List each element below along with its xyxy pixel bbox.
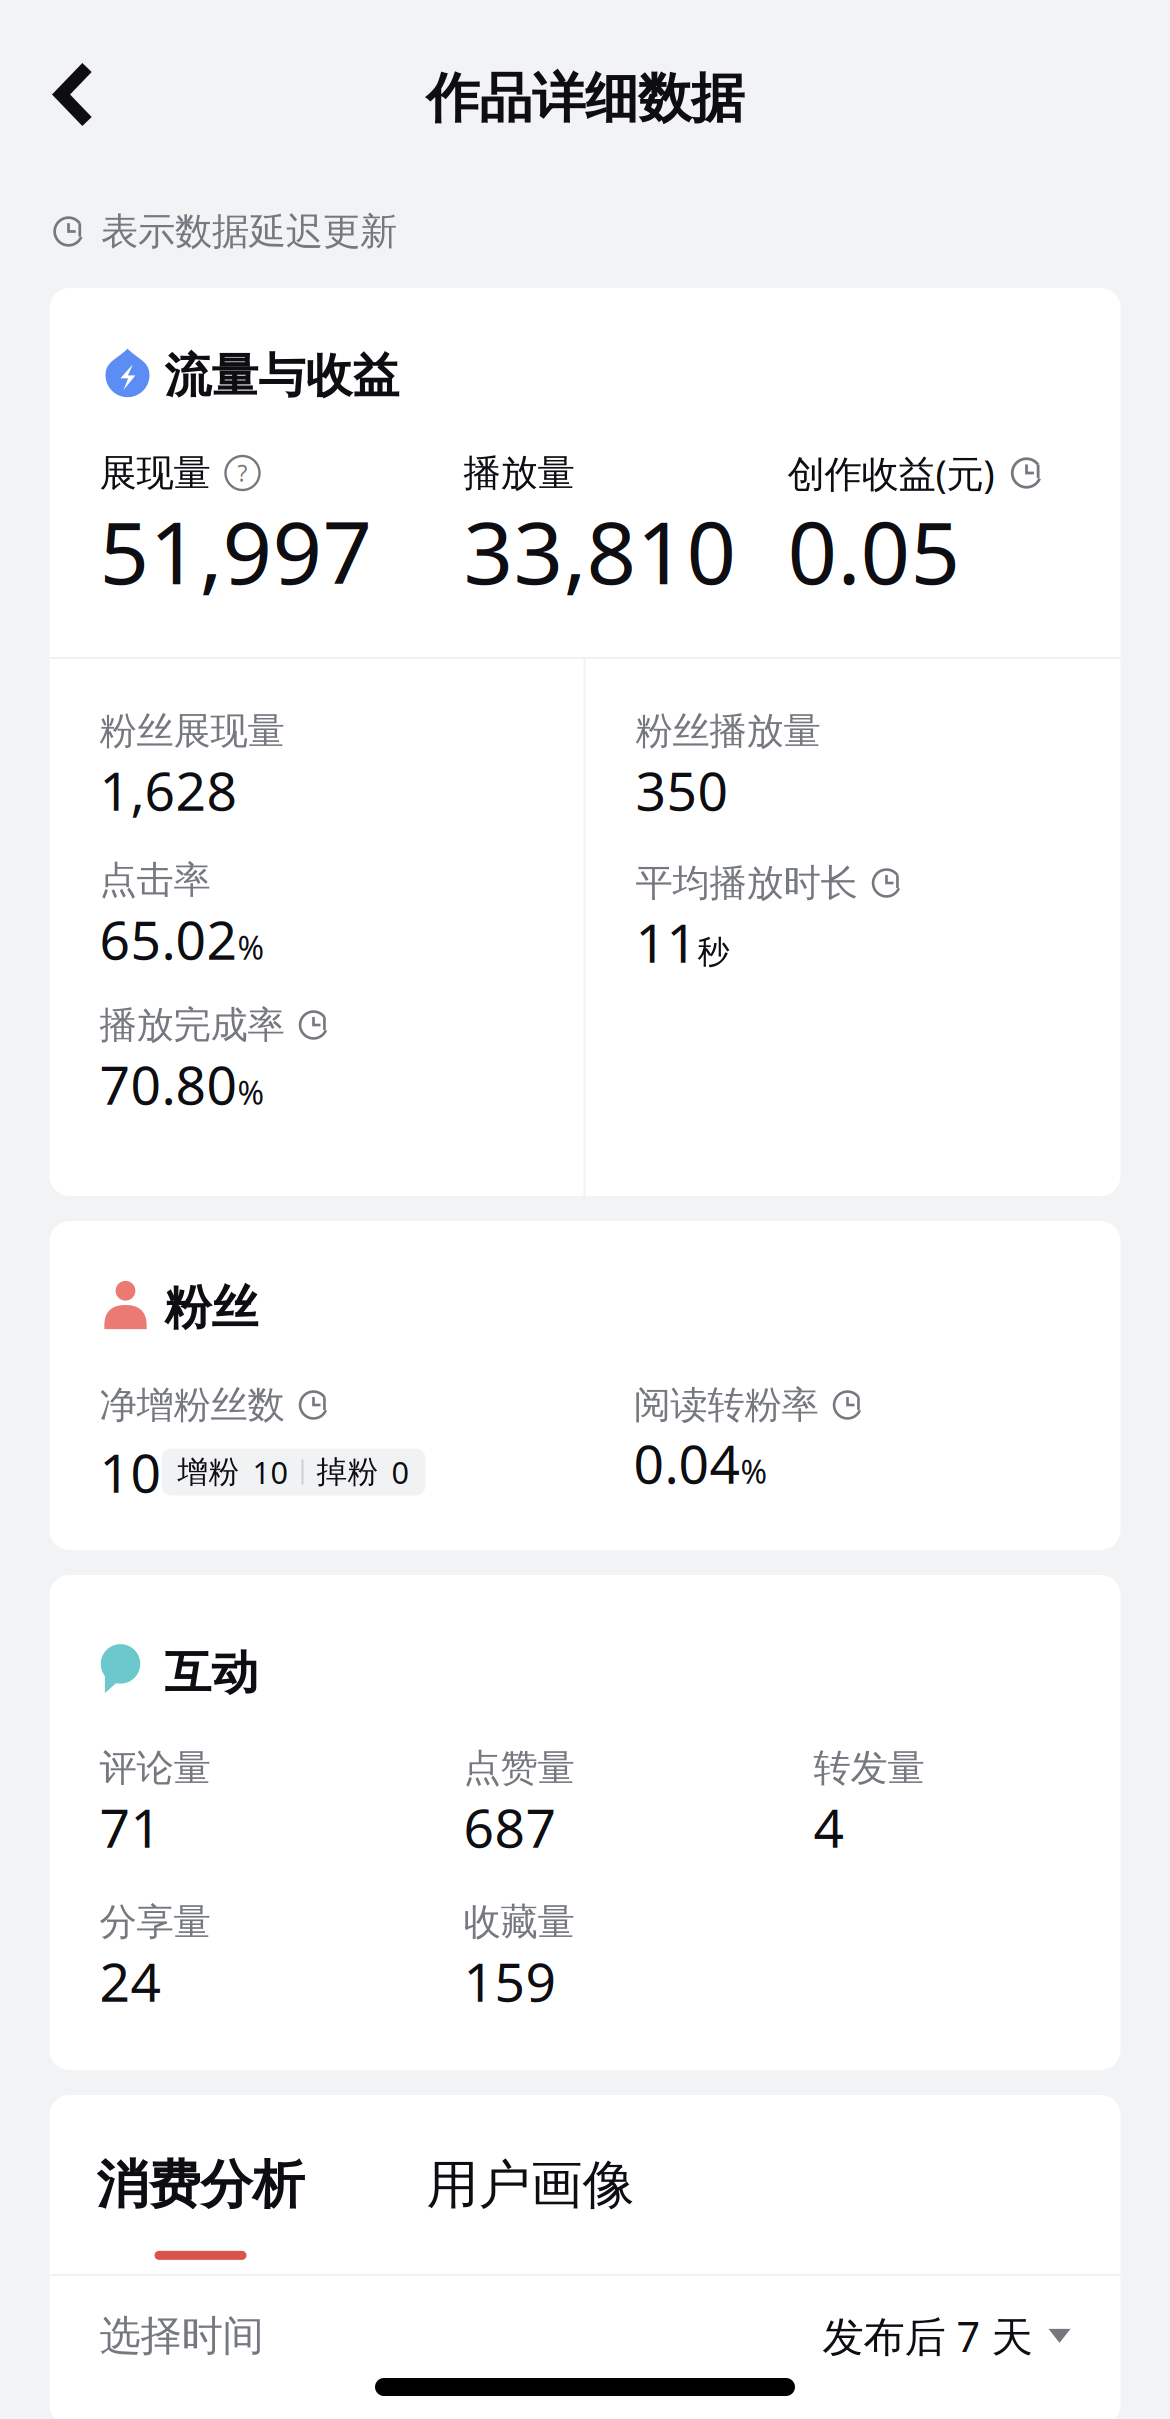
staticText: % bbox=[740, 1450, 767, 1492]
staticText: 发布后 7 天 bbox=[822, 2308, 1032, 2363]
staticText: 用户画像 bbox=[426, 2153, 634, 2217]
staticText: 1,628 bbox=[99, 755, 237, 825]
staticText: 0.05 bbox=[787, 493, 960, 608]
staticText: 播放完成率 bbox=[99, 1002, 284, 1048]
staticText: 65.02 bbox=[99, 904, 237, 974]
staticText: 33,810 bbox=[463, 493, 736, 608]
staticText: 秒 bbox=[697, 932, 729, 972]
staticText: 互动 bbox=[164, 1644, 258, 1702]
staticText: 51,997 bbox=[99, 493, 372, 608]
staticText: 掉粉 bbox=[316, 1453, 378, 1491]
staticText: 11 bbox=[635, 907, 697, 977]
staticText: 作品详细数据 bbox=[426, 66, 744, 131]
staticText: 24 bbox=[99, 1946, 161, 2016]
staticText: 播放量 bbox=[463, 450, 574, 496]
staticText: 粉丝播放量 bbox=[635, 708, 820, 754]
staticText: 流量与收益 bbox=[164, 347, 399, 405]
staticText: 收藏量 bbox=[463, 1899, 574, 1945]
staticText: 10 bbox=[99, 1437, 161, 1507]
staticText: 选择时间 bbox=[99, 2310, 263, 2361]
button[interactable]: 发布后 7 天 bbox=[822, 2308, 1070, 2363]
staticText: 粉丝展现量 bbox=[99, 708, 284, 754]
staticText: 创作收益(元) bbox=[787, 448, 994, 498]
button[interactable]: 用户画像 bbox=[414, 2095, 646, 2274]
staticText: 平均播放时长 bbox=[635, 860, 857, 906]
staticText: 消费分析 bbox=[96, 2153, 304, 2217]
staticText: 粉丝 bbox=[164, 1279, 258, 1337]
staticText: ? bbox=[237, 458, 247, 488]
staticText: 70.80 bbox=[99, 1049, 237, 1119]
button[interactable]: Back bbox=[0, 11, 129, 163]
staticText: 159 bbox=[463, 1946, 556, 2016]
staticText: % bbox=[237, 926, 264, 968]
staticText: 转发量 bbox=[813, 1745, 924, 1791]
staticText: 点赞量 bbox=[463, 1745, 574, 1791]
staticText: 净增粉丝数 bbox=[99, 1382, 284, 1428]
staticText: 阅读转粉率 bbox=[633, 1382, 818, 1428]
staticText: 4 bbox=[813, 1792, 844, 1862]
staticText: 687 bbox=[463, 1792, 556, 1862]
staticText: 0.04 bbox=[633, 1428, 740, 1498]
staticText: % bbox=[237, 1071, 264, 1113]
button[interactable]: 消费分析 bbox=[84, 2095, 316, 2274]
staticText: 表示数据延迟更新 bbox=[101, 209, 397, 254]
staticText: 71 bbox=[99, 1792, 161, 1862]
staticText: 点击率 bbox=[99, 857, 210, 903]
staticText: 分享量 bbox=[99, 1899, 210, 1945]
staticText: 增粉 bbox=[177, 1453, 239, 1491]
staticText: 展现量 bbox=[99, 450, 210, 496]
staticText: 评论量 bbox=[99, 1745, 210, 1791]
staticText: 350 bbox=[635, 755, 728, 825]
staticText: 10 bbox=[252, 1452, 288, 1492]
staticText: 0 bbox=[391, 1452, 409, 1492]
